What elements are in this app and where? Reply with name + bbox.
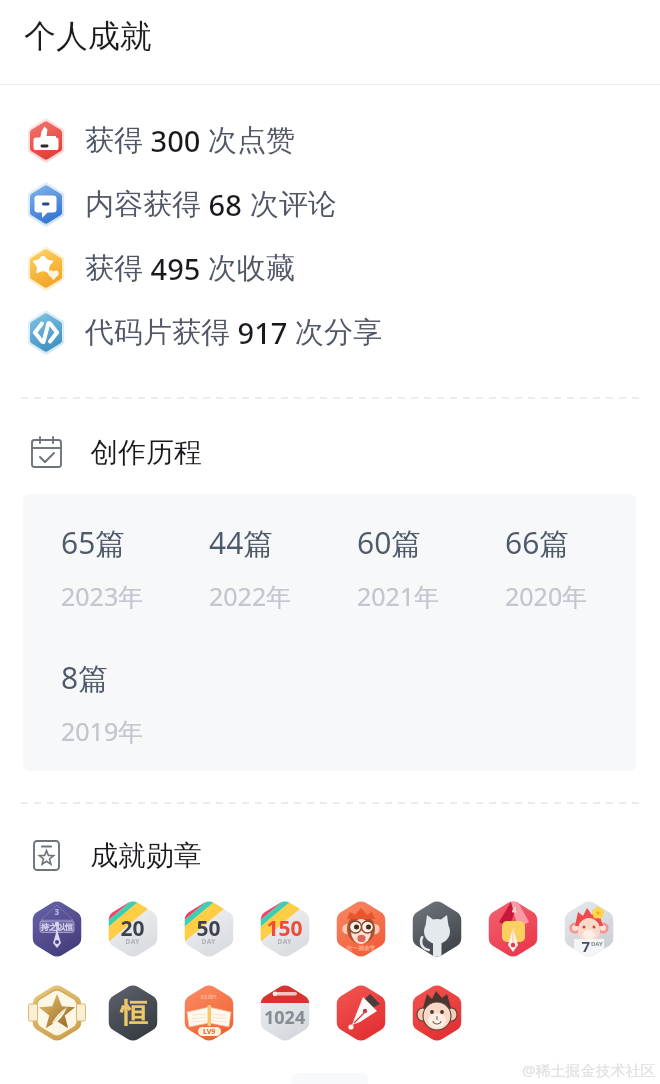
staticText: 2021年	[357, 579, 440, 613]
staticText: 个人成就	[24, 16, 152, 56]
button[interactable]: 恒徽章	[95, 982, 171, 1044]
staticText: @稀土掘金技术社区	[522, 1060, 656, 1080]
button[interactable]: 内容获得	[0, 172, 660, 236]
button[interactable]: 六一徽章	[323, 898, 399, 960]
button[interactable]: 代码片获得	[0, 300, 660, 364]
staticText: 次评论	[250, 186, 337, 223]
button[interactable]: 50天徽章	[171, 898, 247, 960]
staticText: 68	[201, 185, 250, 224]
staticText: 44篇	[209, 522, 274, 563]
staticText: 次分享	[295, 314, 382, 351]
staticText: 2022年	[209, 579, 292, 613]
button[interactable]: 150天徽章	[247, 898, 323, 960]
staticText: 65篇	[61, 522, 126, 563]
staticText: 创作历程	[90, 435, 202, 470]
staticText: 495	[143, 249, 208, 288]
staticText: 2023年	[61, 579, 144, 613]
button[interactable]: 创作徽章	[475, 898, 551, 960]
button[interactable]: 创作历程	[0, 430, 660, 475]
staticText: 次点赞	[208, 122, 295, 159]
button[interactable]: 成就勋章	[0, 833, 660, 878]
button[interactable]: 7天徽章	[551, 898, 627, 960]
button[interactable]: 20天徽章	[95, 898, 171, 960]
staticText: 60篇	[357, 522, 422, 563]
staticText: 2020年	[505, 579, 588, 613]
staticText: 次收藏	[208, 250, 295, 287]
staticText: 内容获得	[85, 186, 201, 223]
button[interactable]: GitHub徽章	[399, 898, 475, 960]
button[interactable]: 获得	[0, 236, 660, 300]
staticText: 8篇	[61, 657, 109, 698]
staticText: 917	[230, 313, 295, 352]
staticText: 成就勋章	[90, 838, 202, 873]
staticText: 2019年	[61, 714, 144, 748]
staticText: 66篇	[505, 522, 570, 563]
button[interactable]: 金星徽章	[19, 982, 95, 1044]
button[interactable]: 阅读徽章	[171, 982, 247, 1044]
staticText: 代码片获得	[85, 314, 230, 351]
staticText: 300	[143, 121, 208, 160]
button[interactable]: 1024徽章	[247, 982, 323, 1044]
button[interactable]: 获得	[0, 108, 660, 172]
button[interactable]: 钢笔徽章	[323, 982, 399, 1044]
staticText: 获得	[85, 250, 143, 287]
button[interactable]: 掘金徽章	[399, 982, 475, 1044]
staticText: 获得	[85, 122, 143, 159]
button[interactable]: 持之以恒徽章	[19, 898, 95, 960]
